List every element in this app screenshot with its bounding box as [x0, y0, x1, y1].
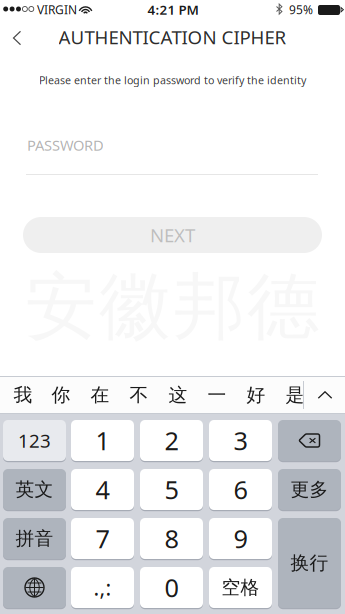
button[interactable]: 这 [159, 377, 197, 413]
button[interactable]: 1 [71, 419, 134, 462]
button[interactable]: 空格 [209, 566, 272, 609]
button[interactable]: 更多 [278, 468, 341, 511]
staticText: PASSWORD [27, 135, 104, 155]
staticText: 我 [13, 383, 32, 406]
button[interactable]: 8 [140, 517, 203, 560]
staticText: 95% [289, 1, 313, 17]
button[interactable]: Back [2, 25, 32, 51]
staticText: .,: [93, 573, 111, 602]
staticText: 不 [129, 383, 148, 406]
button[interactable]: 0 [140, 566, 203, 609]
button[interactable]: 是 [276, 377, 314, 413]
button[interactable]: 9 [209, 517, 272, 560]
button[interactable]: 3 [209, 419, 272, 462]
staticText: 9 [233, 522, 247, 555]
button[interactable]: 在 [81, 377, 119, 413]
staticText: 德 [247, 263, 319, 351]
button[interactable]: Switch keyboard [3, 566, 66, 609]
button[interactable]: 2 [140, 419, 203, 462]
button[interactable]: Expand candidates [305, 377, 345, 413]
staticText: VIRGIN [37, 1, 77, 17]
staticText: 是 [285, 383, 304, 406]
staticText: 邦 [173, 263, 245, 351]
button[interactable]: 拼音 [3, 517, 66, 560]
staticText: 英文 [15, 478, 53, 501]
button[interactable]: 123 [3, 419, 66, 462]
staticText: 4:21 PM [147, 1, 198, 18]
staticText: Please enter the login password to verif… [39, 73, 306, 87]
button[interactable]: 我 [4, 377, 42, 413]
staticText: 拼音 [15, 527, 53, 550]
button[interactable]: 好 [237, 377, 275, 413]
staticText: NEXT [150, 223, 195, 247]
staticText: 徽 [99, 263, 171, 351]
staticText: 好 [246, 383, 265, 406]
staticText: 在 [90, 383, 109, 406]
staticText: AUTHENTICATION CIPHER [58, 25, 286, 49]
button[interactable]: 英文 [3, 468, 66, 511]
staticText: 安 [25, 263, 97, 351]
staticText: 6 [233, 473, 247, 506]
staticText: 一 [207, 383, 226, 406]
staticText: 2 [164, 424, 178, 457]
button[interactable]: 你 [42, 377, 80, 413]
staticText: 换行 [290, 551, 328, 574]
staticText: 你 [51, 383, 70, 406]
staticText: 更多 [290, 478, 328, 501]
button[interactable]: 换行 [278, 517, 341, 609]
staticText: 1 [95, 424, 109, 457]
button[interactable]: Delete [278, 419, 341, 462]
staticText: 5 [164, 473, 178, 506]
button[interactable]: .,: [71, 566, 134, 609]
staticText: 0 [164, 571, 178, 604]
staticText: 空格 [221, 576, 259, 599]
button[interactable]: 6 [209, 468, 272, 511]
staticText: 3 [233, 424, 247, 457]
button[interactable]: 5 [140, 468, 203, 511]
staticText: 123 [18, 428, 51, 453]
staticText: 7 [95, 522, 109, 555]
staticText: 4 [95, 473, 109, 506]
button[interactable]: 7 [71, 517, 134, 560]
button[interactable]: 一 [198, 377, 236, 413]
staticText: 这 [168, 383, 187, 406]
button[interactable]: 4 [71, 468, 134, 511]
button[interactable]: NEXT [23, 217, 322, 253]
button[interactable]: 不 [120, 377, 158, 413]
staticText: 8 [164, 522, 178, 555]
